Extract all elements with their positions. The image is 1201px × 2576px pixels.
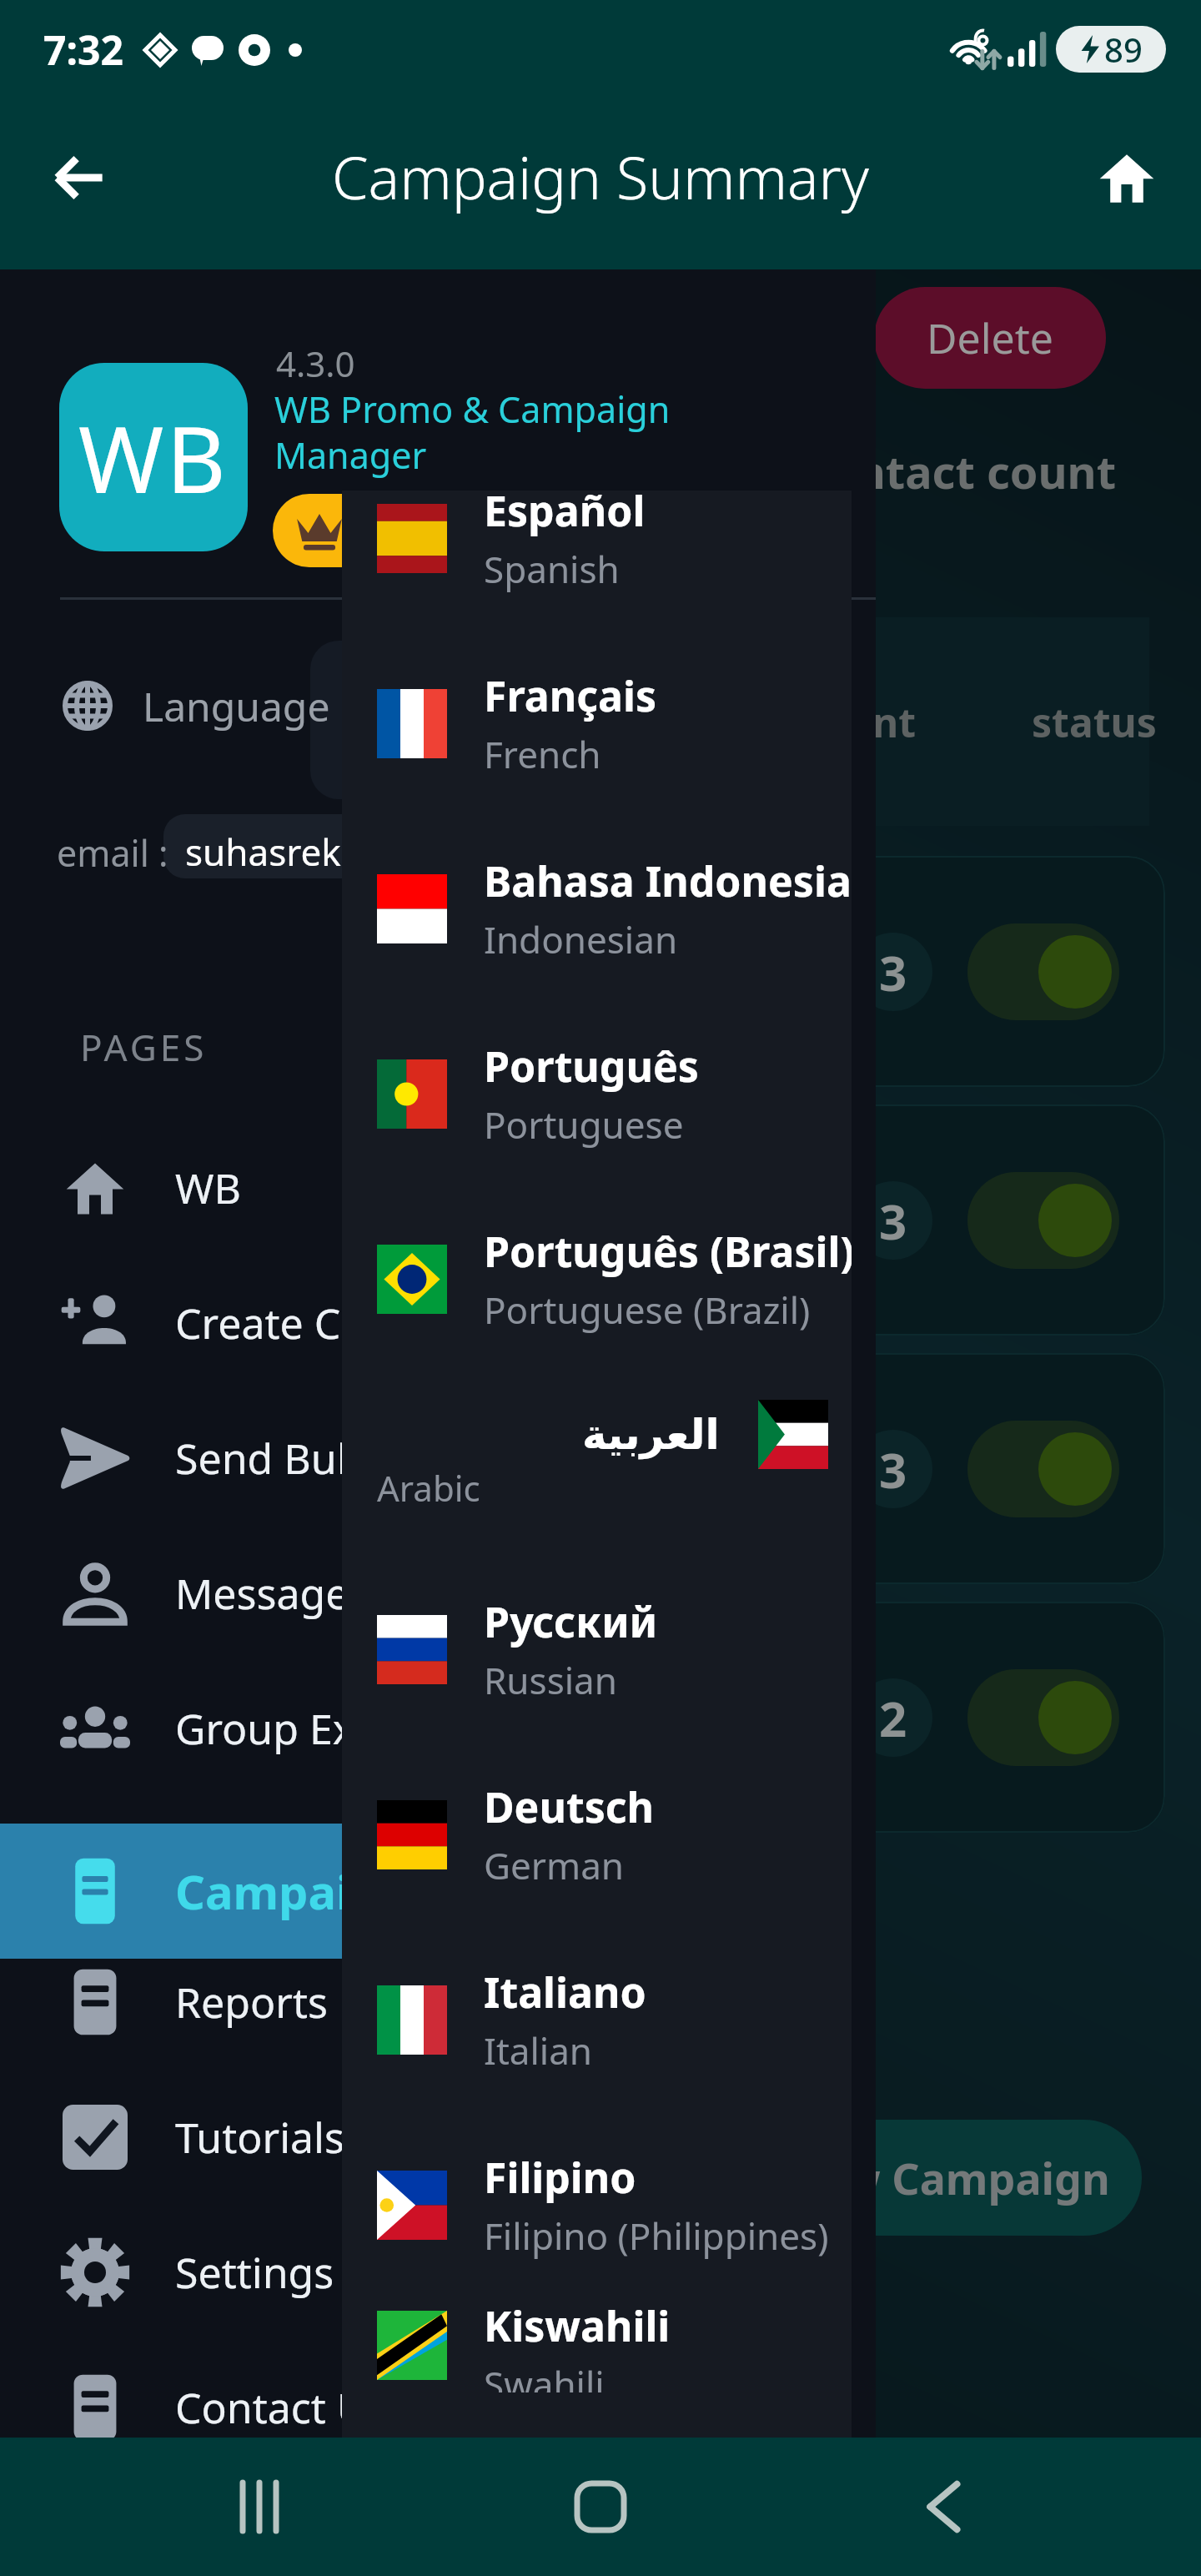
- button[interactable]: Toggle campaign status: [967, 1421, 1119, 1517]
- staticText: Kiswahili: [484, 2297, 671, 2354]
- staticText: 89: [1104, 27, 1143, 72]
- button[interactable]: Home: [546, 2453, 655, 2561]
- button[interactable]: Toggle campaign status: [967, 1669, 1119, 1766]
- staticText: 2: [879, 1685, 907, 1751]
- staticText: status: [1032, 695, 1157, 749]
- button[interactable]: Tutorials: [0, 2070, 876, 2205]
- staticText: email :: [57, 828, 168, 878]
- staticText: Message: [175, 1565, 349, 1622]
- staticText: Delete: [927, 309, 1054, 366]
- button[interactable]: Français: [342, 631, 852, 816]
- staticText: Filipino (Philippines): [484, 2211, 829, 2261]
- staticText: Create Contacts: [175, 1295, 485, 1351]
- button[interactable]: Deutsch: [342, 1742, 852, 1927]
- staticText: count: [801, 695, 917, 749]
- button[interactable]: Toggle campaign status: [967, 923, 1119, 1020]
- staticText: Português: [484, 1038, 699, 1094]
- button[interactable]: العربية: [342, 1371, 852, 1557]
- staticText: 7:32: [43, 23, 123, 77]
- button[interactable]: WB: [0, 1120, 876, 1255]
- staticText: Send Bulk Message: [175, 1430, 555, 1487]
- button[interactable]: Kiswahili: [342, 2297, 852, 2392]
- staticText: 3: [879, 1436, 907, 1502]
- staticText: Tutorials: [175, 2109, 344, 2166]
- staticText: Arabic: [377, 1464, 480, 1512]
- staticText: Spanish: [484, 544, 620, 594]
- button[interactable]: Contact Us: [0, 2340, 876, 2475]
- staticText: Bahasa Indonesia: [484, 853, 852, 909]
- staticText: العربية: [582, 1411, 720, 1459]
- staticText: Campaign: [175, 1859, 410, 1923]
- staticText: WB: [175, 1160, 241, 1216]
- button[interactable]: Premium: [273, 494, 398, 567]
- button[interactable]: Group Extract: [0, 1661, 876, 1796]
- staticText: WB: [78, 395, 229, 520]
- button[interactable]: Settings: [0, 2205, 876, 2340]
- staticText: Group Extract: [175, 1700, 445, 1757]
- staticText: Italian: [484, 2025, 593, 2075]
- staticText: Total contact count: [682, 440, 1117, 502]
- staticText: 3: [879, 1188, 907, 1254]
- staticText: Portuguese (Brazil): [484, 1285, 811, 1335]
- button[interactable]: Italiano: [342, 1927, 852, 2112]
- button[interactable]: Message: [0, 1526, 876, 1661]
- staticText: Portuguese: [484, 1099, 684, 1150]
- staticText: Language: [143, 679, 330, 733]
- button[interactable]: 3: [75, 1104, 1165, 1336]
- button[interactable]: Toggle campaign status: [967, 1172, 1119, 1269]
- button[interactable]: Bahasa Indonesia: [342, 816, 852, 1001]
- staticText: 3: [879, 939, 907, 1005]
- staticText: Indonesian: [484, 914, 678, 964]
- button[interactable]: 2: [75, 1602, 1165, 1833]
- staticText: suhasrekhu@gmail.com: [185, 827, 600, 877]
- staticText: French: [484, 729, 601, 779]
- button[interactable]: Back: [888, 2453, 997, 2561]
- staticText: German: [484, 1840, 625, 1890]
- button[interactable]: Português (Brasil): [342, 1186, 852, 1371]
- button[interactable]: 3: [75, 856, 1165, 1087]
- button[interactable]: Delete: [874, 287, 1106, 389]
- staticText: New Campaign: [783, 2148, 1110, 2207]
- staticText: Русский: [484, 1593, 658, 1650]
- staticText: Français: [484, 667, 657, 724]
- staticText: 4.3.0: [276, 340, 355, 387]
- button[interactable]: Home: [1081, 132, 1173, 224]
- staticText: Deutsch: [484, 1779, 655, 1835]
- staticText: Russian: [484, 1655, 617, 1705]
- staticText: Contact Us: [175, 2379, 388, 2436]
- button[interactable]: New Campaign: [751, 2120, 1142, 2236]
- staticText: Settings: [175, 2244, 334, 2301]
- staticText: Italiano: [484, 1964, 646, 2020]
- button[interactable]: 3: [75, 1353, 1165, 1584]
- staticText: Português (Brasil): [484, 1223, 852, 1280]
- button[interactable]: Language: [0, 631, 876, 781]
- button[interactable]: Campaign: [0, 1824, 842, 1959]
- staticText: PAGES: [80, 1022, 208, 1072]
- staticText: Español: [484, 491, 646, 539]
- button[interactable]: Recents: [204, 2453, 313, 2561]
- button[interactable]: Русский: [342, 1557, 852, 1742]
- button[interactable]: Reports: [0, 1935, 876, 2070]
- button[interactable]: Send Bulk Message: [0, 1391, 876, 1526]
- staticText: Campaign Summary: [332, 137, 869, 216]
- button[interactable]: Português: [342, 1001, 852, 1186]
- staticText: WB Promo & Campaign Manager: [274, 385, 671, 480]
- staticText: Swahili: [484, 2359, 605, 2392]
- button[interactable]: Back: [32, 129, 128, 225]
- staticText: Filipino: [484, 2149, 636, 2206]
- button[interactable]: Create Contacts: [0, 1255, 876, 1391]
- staticText: Reports: [175, 1974, 328, 2030]
- button[interactable]: Filipino: [342, 2112, 852, 2297]
- button[interactable]: Español: [342, 491, 852, 631]
